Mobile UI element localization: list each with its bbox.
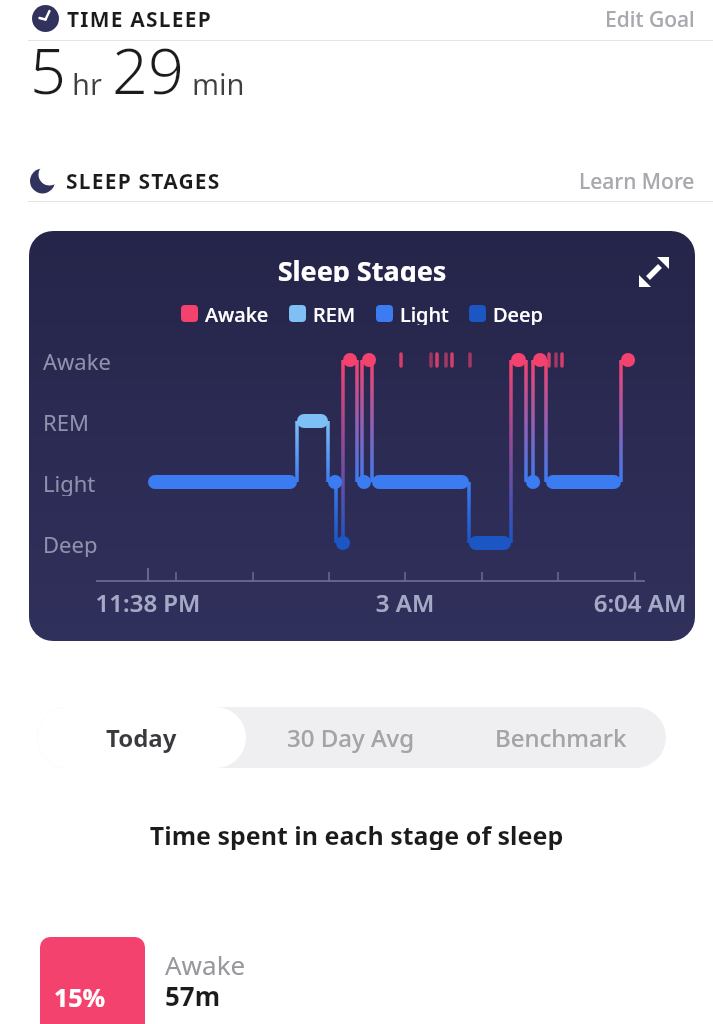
staticText: Awake	[165, 947, 246, 977]
staticText: 57m	[165, 978, 221, 1008]
staticText: Deep	[493, 301, 543, 325]
button[interactable]: 15%	[40, 937, 145, 1024]
staticText: TIME ASLEEP	[67, 5, 212, 34]
staticText: Light	[43, 468, 96, 496]
staticText: 30 Day Avg	[287, 721, 415, 754]
staticText: 11:38 PM	[68, 586, 228, 614]
staticText: min	[192, 64, 245, 103]
button[interactable]: Today	[37, 707, 246, 768]
button[interactable]: Edit Goal	[495, 4, 695, 34]
staticText: Deep	[43, 529, 98, 557]
staticText: Today	[106, 721, 177, 754]
staticText: 29	[112, 27, 184, 113]
staticText: Awake	[205, 301, 269, 325]
staticText: Benchmark	[495, 721, 627, 754]
staticText: 3 AM	[325, 586, 485, 614]
button[interactable]: Sleep Stages	[29, 231, 695, 641]
staticText: Awake	[43, 346, 111, 374]
staticText: Sleep Stages	[29, 252, 695, 282]
staticText: hr	[72, 64, 102, 103]
staticText: 15%	[54, 980, 106, 1014]
staticText: Light	[400, 301, 449, 325]
button[interactable]: Learn More	[495, 166, 695, 196]
staticText: 5	[30, 27, 66, 113]
staticText: 6:04 AM	[560, 586, 695, 614]
staticText: Learn More	[579, 167, 695, 196]
staticText: Edit Goal	[605, 5, 695, 34]
staticText: Time spent in each stage of sleep	[0, 818, 713, 850]
staticText: SLEEP STAGES	[66, 167, 221, 196]
staticText: REM	[313, 301, 356, 325]
button[interactable]: Benchmark	[456, 707, 666, 768]
staticText: REM	[43, 407, 89, 435]
button[interactable]: 30 Day Avg	[246, 707, 456, 768]
